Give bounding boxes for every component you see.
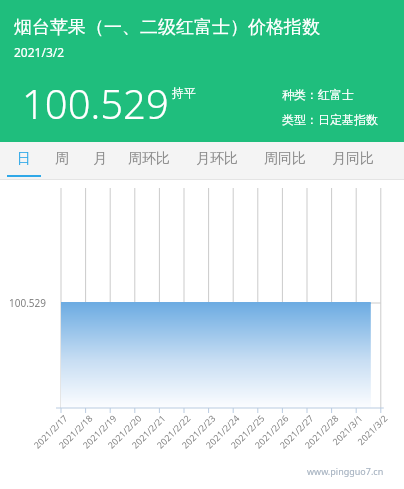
- staticText: 2021/3/2: [14, 44, 65, 60]
- button[interactable]: 周环比: [118, 142, 180, 180]
- staticText: 周同比: [264, 150, 306, 168]
- staticText: 周: [55, 150, 69, 168]
- staticText: www.pingguo7.cn: [307, 465, 384, 477]
- staticText: 2021/2/26: [241, 412, 290, 461]
- staticText: 2021/2/19: [69, 412, 118, 461]
- staticText: 类型：日定基指数: [282, 112, 378, 127]
- button[interactable]: 周: [44, 142, 80, 180]
- staticText: 2021/2/18: [45, 412, 94, 461]
- staticText: 月: [93, 150, 107, 168]
- staticText: 日: [17, 150, 31, 168]
- staticText: 月环比: [196, 150, 238, 168]
- staticText: 月同比: [332, 150, 374, 168]
- staticText: 2021/2/20: [94, 412, 143, 461]
- staticText: 2021/3/2: [340, 412, 389, 461]
- staticText: 烟台苹果（一、二级红富士）价格指数: [14, 16, 320, 39]
- staticText: 2021/2/27: [266, 412, 315, 461]
- staticText: 2021/2/17: [20, 412, 69, 461]
- button[interactable]: 月: [82, 142, 118, 180]
- staticText: 100.529: [9, 296, 46, 310]
- staticText: 持平: [172, 85, 196, 100]
- staticText: 2021/2/22: [143, 412, 192, 461]
- staticText: 2021/2/28: [291, 412, 340, 461]
- button[interactable]: 日: [6, 142, 42, 180]
- staticText: 100.529: [22, 76, 169, 130]
- staticText: 2021/2/23: [168, 412, 217, 461]
- staticText: 2021/2/21: [118, 412, 167, 461]
- staticText: 周环比: [128, 150, 170, 168]
- button[interactable]: 月环比: [186, 142, 248, 180]
- staticText: 2021/3/1: [315, 412, 364, 461]
- staticText: 2021/2/24: [192, 412, 241, 461]
- button[interactable]: 月同比: [322, 142, 384, 180]
- staticText: 种类：红富士: [282, 87, 354, 102]
- staticText: 2021/2/25: [217, 412, 266, 461]
- button[interactable]: 周同比: [254, 142, 316, 180]
